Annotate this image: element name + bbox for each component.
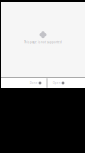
button[interactable]: Open bbox=[47, 78, 69, 88]
button[interactable]: Done bbox=[24, 78, 46, 88]
staticText: Done bbox=[30, 81, 38, 85]
staticText: Open bbox=[53, 81, 61, 85]
staticText: This page is not supported bbox=[24, 40, 62, 44]
